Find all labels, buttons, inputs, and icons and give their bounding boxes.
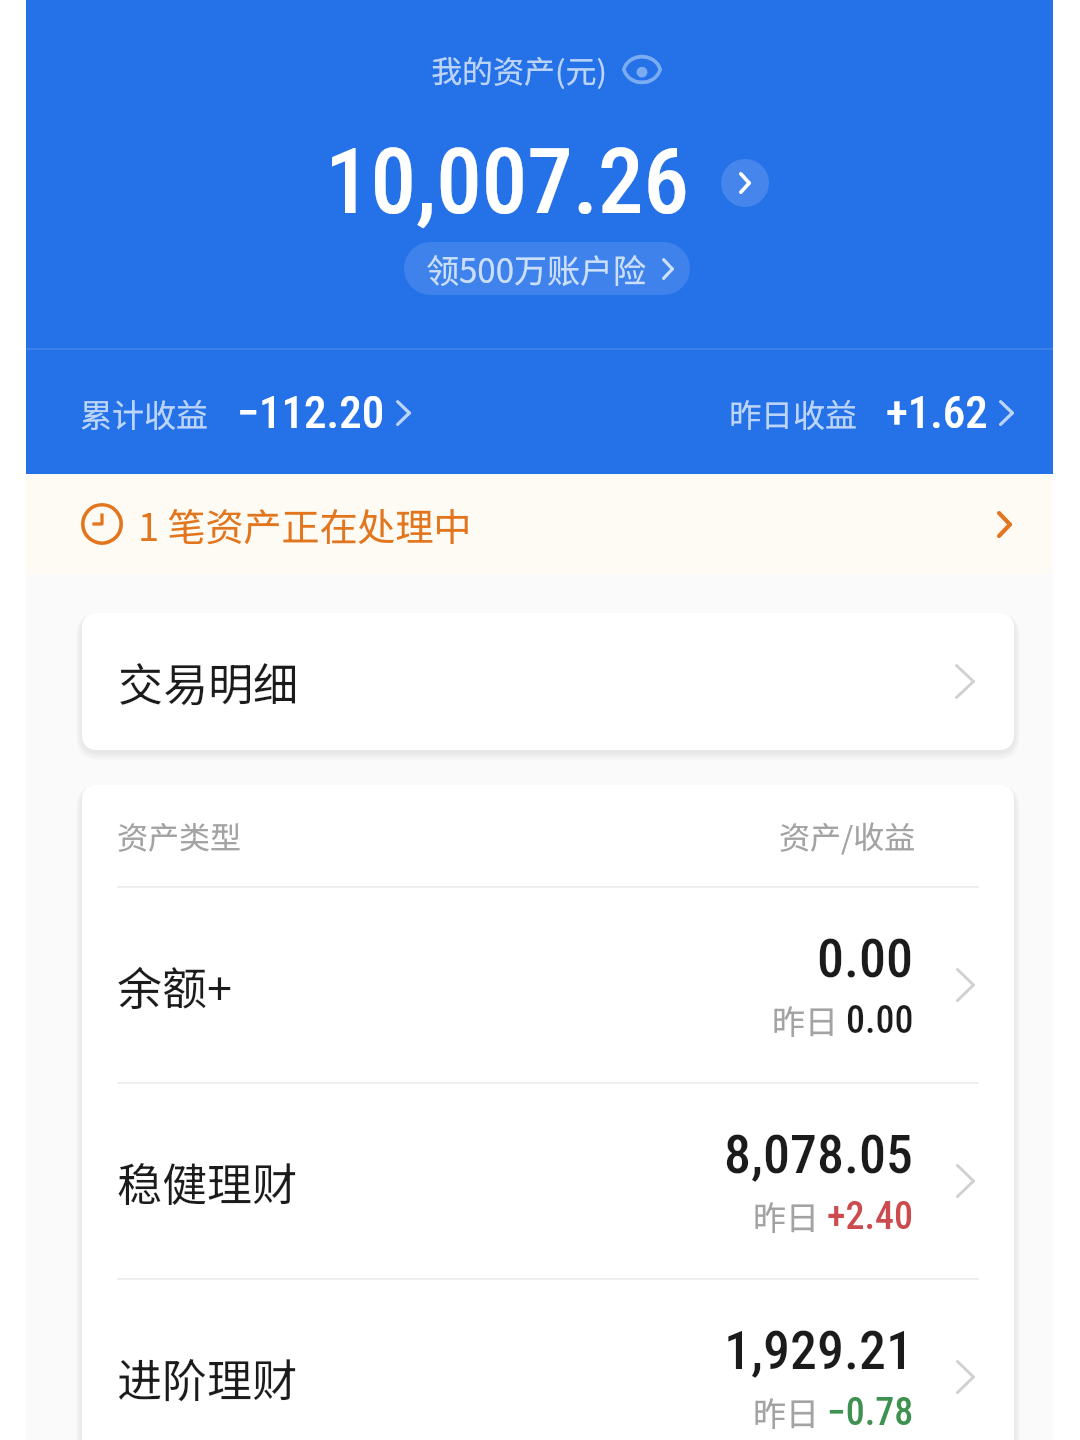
button[interactable]: 累计收益 [26,368,421,457]
staticText: +1.62 [886,386,988,439]
staticText: 稳健理财 [117,1149,298,1214]
staticText: 资产类型 [117,813,241,858]
button[interactable]: 交易明细 [82,613,1014,750]
staticText: 8,078.05 [724,1123,914,1186]
staticText: +2.40 [827,1194,914,1239]
button[interactable]: 进阶理财 [82,1280,1014,1440]
button[interactable]: 1 笔资产正在处理中 [26,474,1053,574]
staticText: 昨日收益 [729,390,858,436]
staticText: 0.00 [817,927,914,990]
staticText: 1 笔资产正在处理中 [138,497,472,552]
staticText: 交易明细 [118,649,299,714]
button[interactable]: 资产详情 [721,159,769,207]
button[interactable]: 余额+ [82,888,1014,1082]
button[interactable]: 稳健理财 [82,1084,1014,1278]
staticText: 资产/收益 [779,813,916,858]
staticText: −112.20 [237,386,385,439]
staticText: 0.00 [846,998,914,1043]
button[interactable]: 昨日收益 [719,368,1053,457]
button[interactable]: 领500万账户险 [404,242,690,295]
staticText: 昨日 [753,1388,827,1436]
staticText: 1,929.21 [724,1319,914,1382]
staticText: 我的资产(元) [431,47,607,92]
staticText: 进阶理财 [117,1345,298,1410]
staticText: 领500万账户险 [426,245,646,293]
staticText: 累计收益 [80,390,209,436]
staticText: 10,007.26 [325,129,690,236]
staticText: 昨日 [772,996,846,1044]
staticText: 昨日 [753,1192,827,1240]
staticText: 余额+ [117,953,232,1018]
staticText: −0.78 [827,1390,914,1435]
